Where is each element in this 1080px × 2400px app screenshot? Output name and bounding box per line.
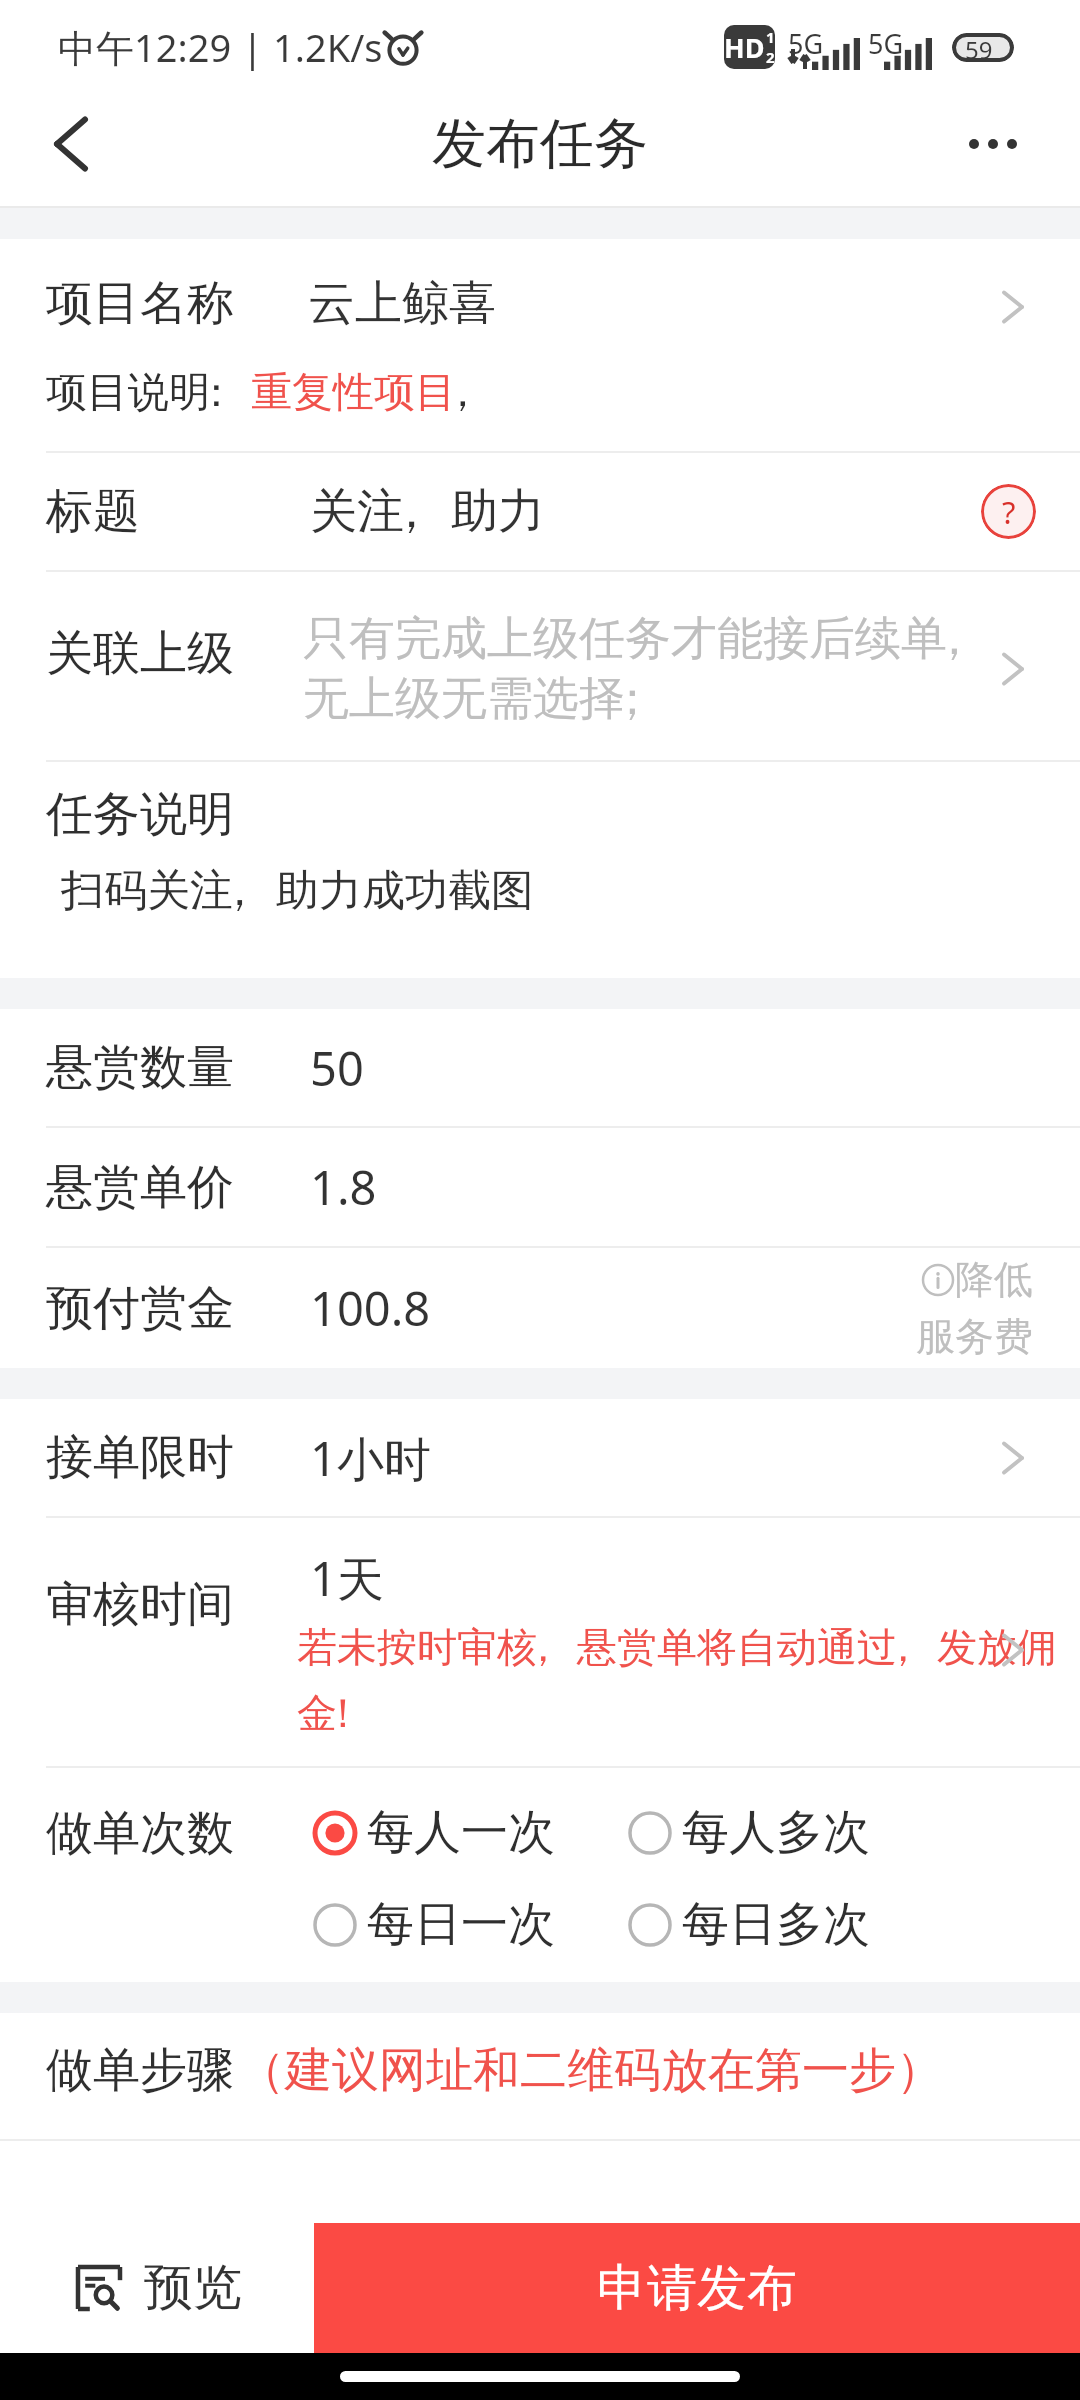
staticText: 5G xyxy=(868,25,904,62)
staticText: 若未按时审核 xyxy=(297,1622,537,1672)
staticText: 云上鲸喜 xyxy=(308,274,496,333)
staticText: 2 xyxy=(766,47,775,67)
staticText: 1.8 xyxy=(310,1155,377,1219)
staticText: HD xyxy=(724,29,765,66)
staticText: 只有完成上级任务才能接后续单 xyxy=(303,610,947,668)
staticText: 5G xyxy=(788,25,824,62)
staticText: 无上级无需选择 xyxy=(303,670,625,728)
staticText: ， xyxy=(931,610,977,668)
button[interactable]: 审核时间 xyxy=(0,1518,1080,1766)
staticText: 发布任务 xyxy=(432,110,648,178)
staticText: ， xyxy=(883,1622,923,1672)
staticText: 项目名称 xyxy=(46,274,234,333)
staticText: 扫码关注 xyxy=(61,864,233,918)
staticText: 1 xyxy=(766,27,775,47)
button[interactable]: 每日多次 xyxy=(626,1895,941,1954)
staticText: （建议网址和二维码放在第一步） xyxy=(238,2041,943,2100)
staticText: 1.2K/s xyxy=(273,21,383,73)
staticText: ！ xyxy=(323,1688,363,1738)
staticText: 做单次数 xyxy=(46,1804,234,1863)
button[interactable]: 接单限时 xyxy=(0,1399,1080,1516)
staticText: 预览 xyxy=(144,2257,242,2319)
staticText: 关联上级 xyxy=(46,624,234,683)
staticText: 助力 xyxy=(451,482,545,541)
button[interactable]: 项目名称 xyxy=(0,239,1080,451)
staticText: 悬赏单将自动通过 xyxy=(577,1622,897,1672)
staticText: 每人多次 xyxy=(682,1803,870,1862)
staticText: 助力成功截图 xyxy=(276,864,534,918)
button[interactable]: Back xyxy=(0,94,140,206)
staticText: 重复性项目 xyxy=(251,367,456,419)
staticText: 关注 xyxy=(310,482,404,541)
staticText: 预付赏金 xyxy=(46,1279,234,1338)
staticText: 悬赏单价 xyxy=(46,1158,234,1217)
staticText: 50 xyxy=(310,1036,364,1100)
staticText: 悬赏数量 xyxy=(46,1038,234,1097)
staticText: ， xyxy=(523,1622,563,1672)
staticText: ； xyxy=(609,670,655,728)
staticText: 每人一次 xyxy=(367,1803,555,1862)
staticText: 1天 xyxy=(310,1546,384,1610)
staticText: ： xyxy=(196,367,237,419)
staticText: ? xyxy=(1002,491,1016,533)
staticText: 1小时 xyxy=(310,1426,431,1490)
staticText: 接单限时 xyxy=(46,1428,234,1487)
staticText: 59 xyxy=(965,33,993,62)
staticText: 项目说明 xyxy=(46,367,210,419)
staticText: 审核时间 xyxy=(46,1575,234,1634)
button[interactable]: 关联上级 xyxy=(0,572,1080,760)
button[interactable]: 每人多次 xyxy=(626,1803,941,1862)
staticText: 标题 xyxy=(46,482,140,541)
staticText: 每日多次 xyxy=(682,1895,870,1954)
button[interactable]: 申请发布 xyxy=(314,2223,1080,2353)
button[interactable]: 预览 xyxy=(0,2223,314,2353)
staticText: | xyxy=(232,21,273,73)
staticText: 100.8 xyxy=(310,1276,431,1340)
staticText: 做单步骤 xyxy=(46,2041,234,2100)
button[interactable]: 每人一次 xyxy=(311,1803,626,1862)
staticText: 每日一次 xyxy=(367,1895,555,1954)
staticText: 金 xyxy=(297,1688,337,1738)
staticText: 服务费 xyxy=(916,1312,1033,1361)
staticText: 发放佣 xyxy=(937,1622,1057,1672)
button[interactable]: 每日一次 xyxy=(311,1895,626,1954)
staticText: 中午12:29 xyxy=(58,21,232,73)
staticText: 申请发布 xyxy=(597,2257,797,2320)
button[interactable]: 标题 xyxy=(0,453,1080,570)
staticText: ， xyxy=(388,482,435,541)
button[interactable]: More options xyxy=(950,94,1080,206)
staticText: 降低 xyxy=(955,1255,1033,1304)
staticText: 任务说明 xyxy=(46,785,234,844)
staticText: ， xyxy=(442,367,483,419)
other: Help xyxy=(981,484,1036,539)
staticText: ， xyxy=(218,864,261,918)
